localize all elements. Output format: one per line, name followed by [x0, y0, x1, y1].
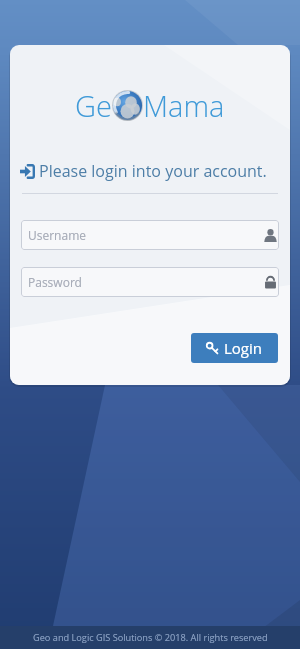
button[interactable]: Username: [21, 220, 279, 250]
staticText: Username: [28, 227, 87, 243]
staticText: Mama: [143, 86, 225, 125]
staticText: Please login into your account.: [39, 160, 267, 182]
button[interactable]: Login: [191, 333, 278, 363]
staticText: Geo and Logic GIS Solutions © 2018. All …: [33, 631, 268, 644]
staticText: Login: [224, 338, 263, 358]
button[interactable]: Password: [21, 267, 279, 297]
staticText: Password: [28, 274, 82, 290]
staticText: Ge: [75, 86, 112, 125]
